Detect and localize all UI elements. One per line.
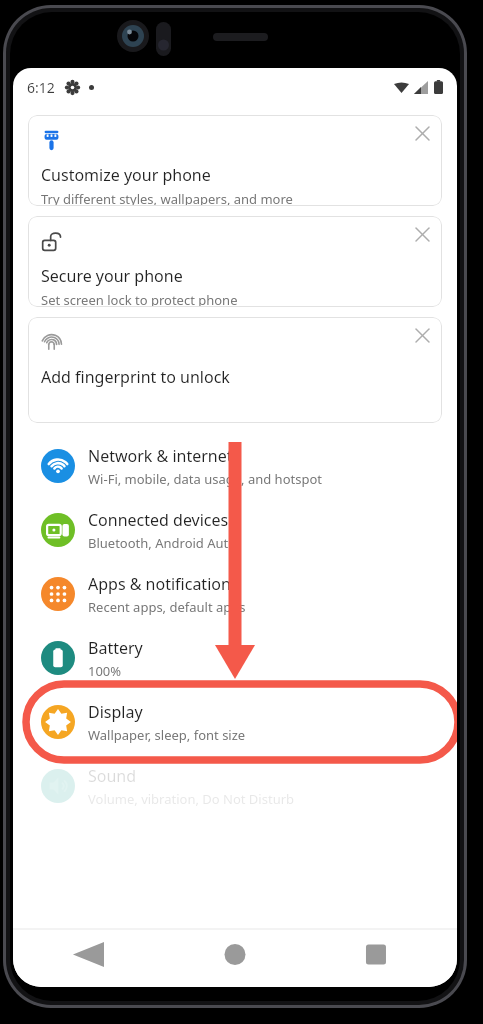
staticText: Apps & notifications [88,573,239,595]
button[interactable]: Dismiss suggestion [28,115,442,206]
staticText: Wallpaper, sleep, font size [88,726,246,744]
staticText: Display [88,701,143,723]
staticText: Set screen lock to protect phone [41,291,238,307]
staticText: Wi-Fi, mobile, data usage, and hotspot [88,470,322,488]
button[interactable]: Battery [13,626,457,690]
button[interactable]: Sound [13,754,457,818]
button[interactable]: Dismiss suggestion [28,216,442,307]
button[interactable]: Network & internet [13,434,457,498]
staticText: Bluetooth, Android Auto [88,534,237,552]
staticText: Connected devices [88,509,229,531]
staticText: Add fingerprint to unlock [41,366,230,388]
staticText: Customize your phone [41,164,211,186]
staticText: Battery [88,637,143,659]
button[interactable]: Dismiss suggestion [407,320,437,350]
button[interactable]: Display [13,690,457,754]
staticText: Secure your phone [41,265,183,287]
staticText: Volume, vibration, Do Not Disturb [88,790,295,808]
staticText: Network & internet [88,445,233,467]
staticText: Sound [88,765,137,787]
button[interactable]: Connected devices [13,498,457,562]
button[interactable]: Apps & notifications [13,562,457,626]
button[interactable]: Dismiss suggestion [28,317,442,423]
button[interactable]: Dismiss suggestion [407,219,437,249]
staticText: Recent apps, default apps [88,598,246,616]
staticText: 6:12 [27,78,55,97]
staticText: Try different styles, wallpapers, and mo… [41,190,293,206]
button[interactable]: Dismiss suggestion [407,118,437,148]
staticText: 100% [88,662,122,680]
